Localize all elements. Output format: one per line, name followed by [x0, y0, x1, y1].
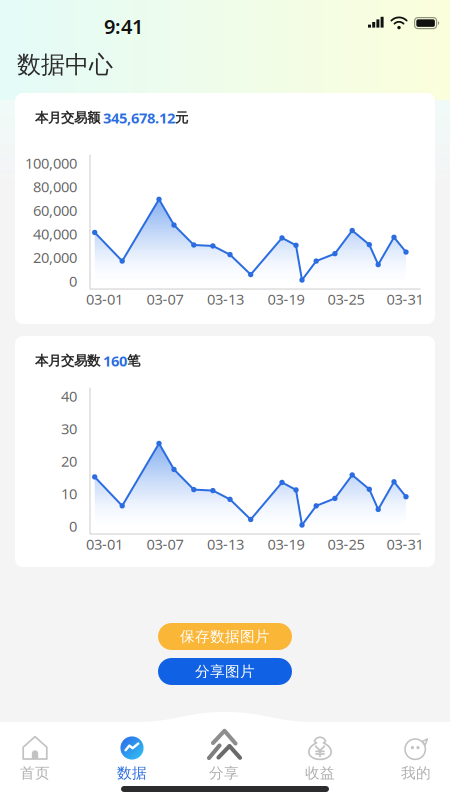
staticText: 本月交易数 — [35, 353, 100, 369]
button[interactable]: 我的 — [368, 710, 450, 800]
staticText: 分享图片 — [195, 662, 255, 680]
button[interactable]: 收益 — [272, 710, 368, 800]
staticText: 03-19 — [267, 289, 304, 309]
staticText: 03-19 — [267, 534, 304, 554]
staticText: 03-31 — [386, 289, 423, 309]
staticText: 数据中心 — [17, 50, 113, 79]
staticText: 03-13 — [207, 534, 244, 554]
staticText: 元 — [175, 110, 188, 126]
staticText: 345,678.12 — [103, 108, 175, 127]
button[interactable]: 分享图片 — [158, 658, 292, 685]
staticText — [100, 109, 103, 127]
staticText: 20 — [61, 451, 77, 471]
staticText: 我的 — [401, 764, 431, 782]
staticText: 本月交易额 — [35, 110, 100, 126]
button[interactable]: 分享 — [178, 710, 272, 800]
button[interactable]: 首页 — [0, 710, 83, 800]
staticText: 0 — [69, 271, 77, 291]
staticText: 笔 — [127, 353, 140, 369]
staticText: 03-31 — [386, 534, 423, 554]
staticText: 03-01 — [86, 534, 123, 554]
staticText: 首页 — [20, 764, 50, 782]
staticText: 30 — [61, 419, 77, 438]
staticText: 03-07 — [146, 289, 183, 309]
staticText: 0 — [69, 516, 77, 536]
staticText: 03-07 — [146, 534, 183, 554]
staticText: 40 — [61, 386, 77, 406]
staticText — [100, 352, 103, 370]
button[interactable]: 数据 — [83, 710, 178, 800]
staticText: 03-13 — [207, 289, 244, 309]
staticText: 分享 — [209, 764, 239, 782]
staticText: 20,000 — [33, 248, 77, 267]
staticText: 40,000 — [33, 224, 77, 244]
staticText: 收益 — [305, 764, 335, 782]
button[interactable]: 保存数据图片 — [158, 623, 292, 650]
staticText: 数据 — [117, 764, 147, 782]
staticText: 160 — [103, 351, 127, 370]
staticText: 100,000 — [25, 153, 77, 173]
staticText: 保存数据图片 — [180, 627, 270, 645]
staticText: 80,000 — [33, 177, 77, 196]
staticText: 03-01 — [86, 289, 123, 309]
staticText: 9:41 — [104, 13, 143, 40]
staticText: 03-25 — [327, 534, 364, 554]
staticText: 03-25 — [327, 289, 364, 309]
staticText: 60,000 — [33, 200, 77, 220]
staticText: 10 — [61, 484, 77, 503]
